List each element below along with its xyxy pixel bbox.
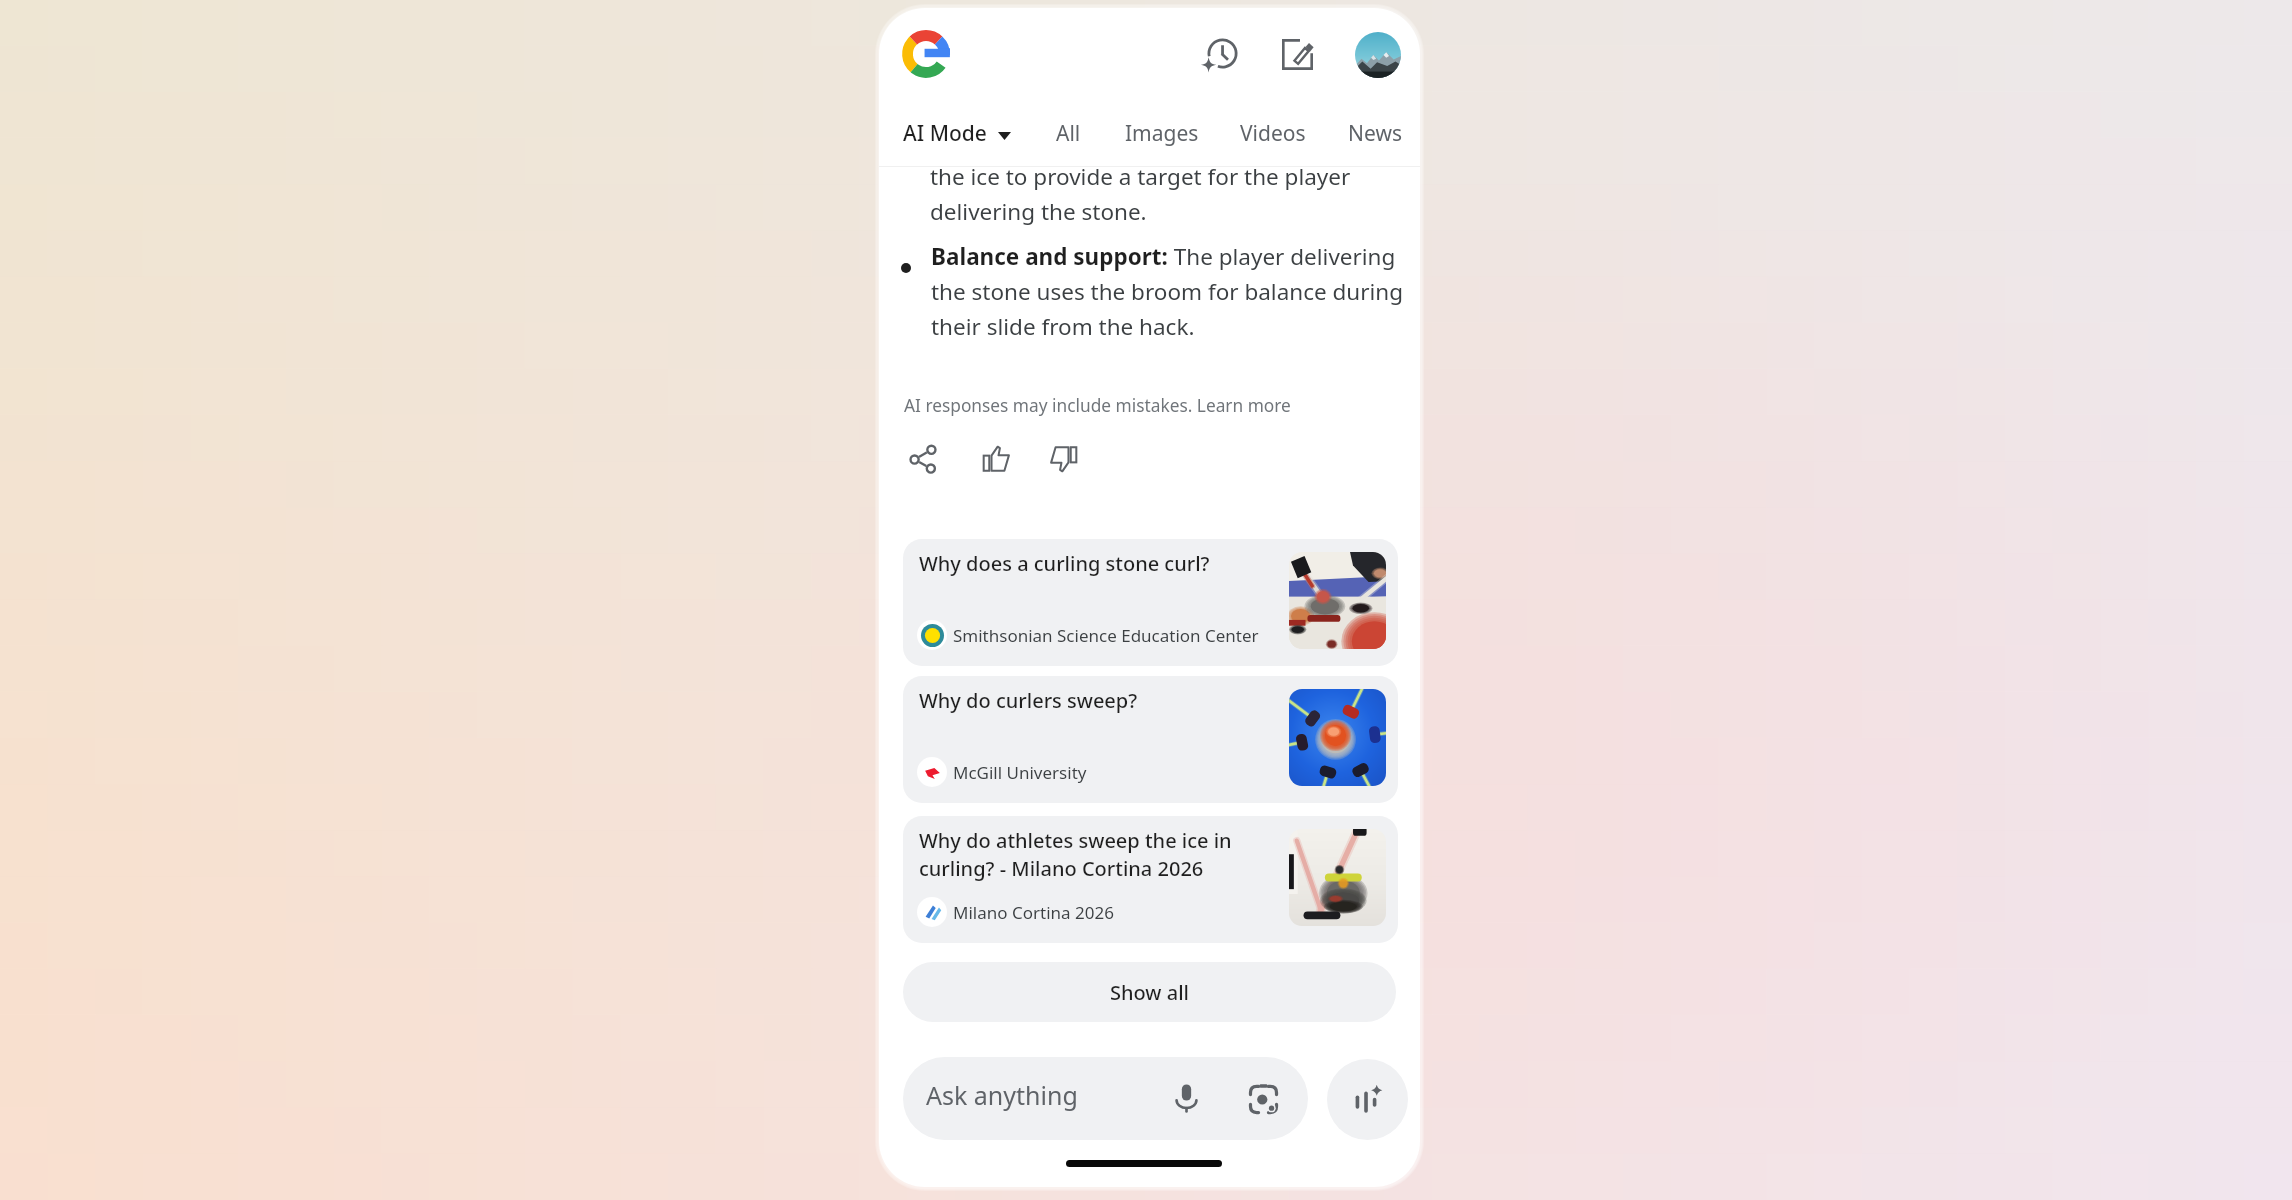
button[interactable]: All	[1048, 112, 1089, 155]
staticText: AI responses may include mistakes. Learn…	[904, 394, 1291, 418]
button[interactable]: Images	[1117, 112, 1207, 155]
staticText: All	[1056, 119, 1081, 148]
button[interactable]: AI Mode	[895, 112, 1019, 155]
staticText: Show all	[1110, 979, 1189, 1006]
staticText: Smithsonian Science Education Center	[953, 624, 1259, 647]
button[interactable]: Show all	[903, 962, 1396, 1022]
button[interactable]: New chat	[1272, 29, 1322, 79]
staticText: AI Mode	[903, 119, 987, 148]
button[interactable]: Google	[894, 22, 958, 86]
staticText: Why do athletes sweep the ice in curling…	[919, 827, 1277, 882]
staticText: Milano Cortina 2026	[953, 901, 1114, 924]
button[interactable]: Why do athletes sweep the ice in curling…	[903, 816, 1398, 943]
staticText: News	[1348, 119, 1402, 148]
button[interactable]: Thumbs down	[1040, 435, 1088, 483]
button[interactable]: Share	[899, 435, 947, 483]
button[interactable]: Thumbs up	[972, 435, 1020, 483]
staticText: Ask anything	[926, 1078, 1078, 1112]
button[interactable]: Search history	[1195, 30, 1245, 80]
button[interactable]: Ask anything	[903, 1057, 1308, 1140]
button[interactable]: Why does a curling stone curl?	[903, 539, 1398, 666]
button[interactable]: Why do curlers sweep?	[903, 676, 1398, 803]
staticText: Images	[1125, 119, 1199, 148]
button[interactable]: Google Lens	[1239, 1075, 1287, 1123]
button[interactable]: Live	[1327, 1059, 1408, 1140]
staticText: the ice to provide a target for the play…	[930, 161, 1408, 227]
button[interactable]: Account	[1355, 32, 1401, 78]
button[interactable]: Voice search	[1162, 1073, 1210, 1121]
staticText: Balance and support: The player deliveri…	[931, 241, 1413, 342]
staticText: Why does a curling stone curl?	[919, 550, 1210, 577]
staticText: McGill University	[953, 761, 1087, 784]
staticText: Videos	[1240, 119, 1306, 148]
staticText: Why do curlers sweep?	[919, 687, 1138, 714]
button[interactable]: News	[1340, 112, 1410, 155]
button[interactable]: Videos	[1232, 112, 1314, 155]
